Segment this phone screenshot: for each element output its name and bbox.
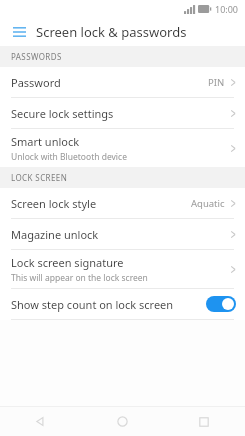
- button[interactable]: Home: [81, 407, 163, 436]
- button[interactable]: Menu: [8, 21, 30, 43]
- staticText: PASSWORDS: [11, 51, 62, 62]
- button[interactable]: Secure lock settings: [0, 98, 245, 128]
- button[interactable]: Show step count on lock screen: [0, 289, 245, 319]
- staticText: Secure lock settings: [11, 106, 114, 121]
- staticText: LOCK SCREEN: [11, 172, 68, 183]
- staticText: Magazine unlock: [11, 227, 99, 242]
- staticText: Smart unlock: [11, 134, 80, 149]
- staticText: Show step count on lock screen: [11, 297, 206, 312]
- staticText: Password: [11, 75, 61, 90]
- staticText: Aquatic: [191, 197, 225, 210]
- button[interactable]: Screen lock style: [0, 188, 245, 218]
- staticText: This will appear on the lock screen: [11, 272, 148, 284]
- staticText: PIN: [208, 76, 225, 89]
- button[interactable]: Password: [0, 67, 245, 97]
- button[interactable]: Lock screen signature: [0, 250, 245, 288]
- other: Show step count toggle: [206, 296, 236, 312]
- button[interactable]: Recents: [163, 407, 245, 436]
- button[interactable]: Back: [0, 407, 81, 436]
- staticText: Screen lock & passwords: [36, 23, 187, 41]
- staticText: Unlock with Bluetooth device: [11, 151, 127, 163]
- staticText: Lock screen signature: [11, 255, 124, 270]
- button[interactable]: Smart unlock: [0, 129, 245, 167]
- button[interactable]: Magazine unlock: [0, 219, 245, 249]
- staticText: 10:00: [215, 3, 239, 15]
- staticText: Screen lock style: [11, 196, 97, 211]
